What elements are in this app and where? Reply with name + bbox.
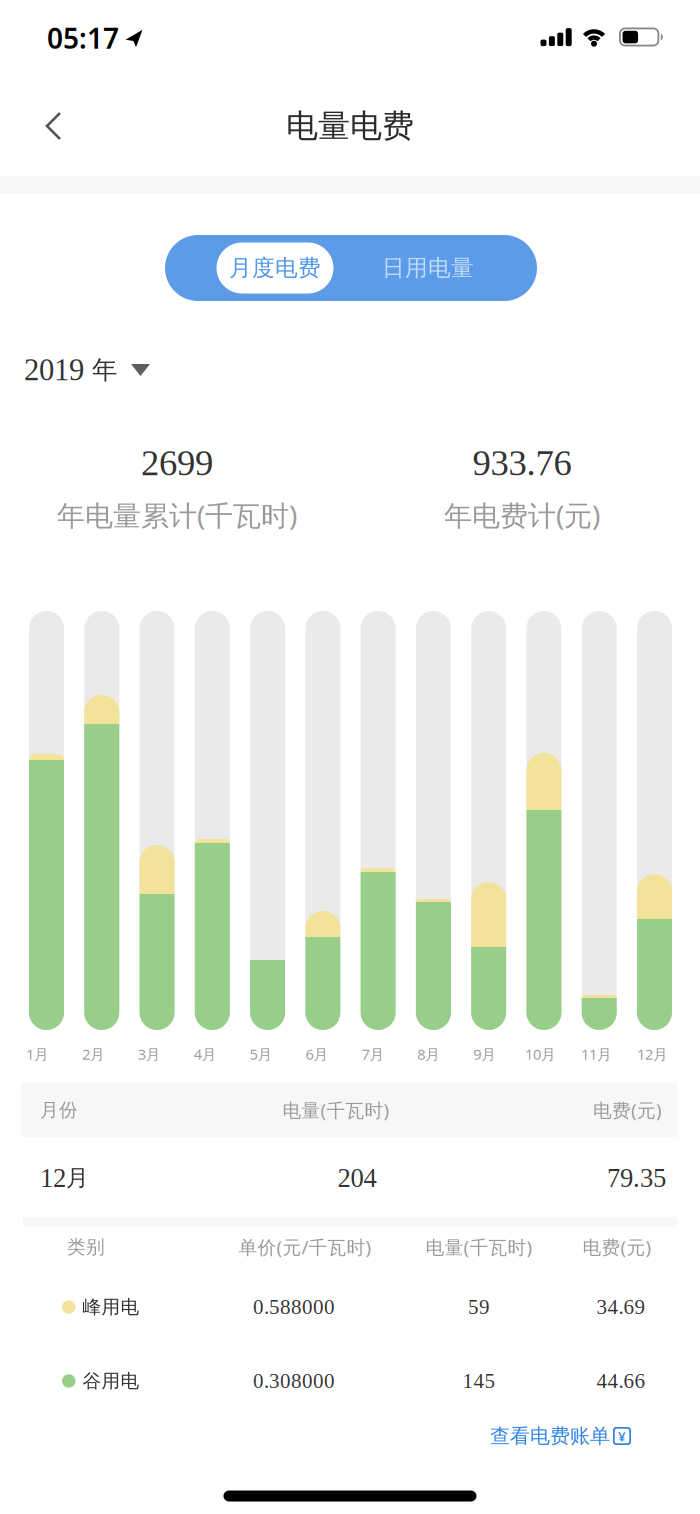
staticText: 3月	[138, 1044, 161, 1064]
staticText: 月	[66, 1164, 89, 1192]
staticText: 电量(千瓦时)	[425, 1235, 532, 1259]
staticText: 查看电费账单	[490, 1424, 610, 1448]
button[interactable]: 2019	[0, 353, 700, 387]
button[interactable]: 查看电费账单	[0, 1424, 700, 1448]
staticText: 日用电量	[382, 254, 474, 282]
staticText: 2019	[24, 353, 92, 387]
staticText: 204	[337, 1163, 376, 1193]
staticText: 933.76	[472, 443, 571, 483]
button[interactable]: Back	[33, 104, 73, 148]
staticText: 59	[468, 1295, 490, 1319]
staticText: 10月	[525, 1044, 556, 1064]
staticText: 1月	[26, 1044, 49, 1064]
staticText: 2699	[141, 443, 213, 483]
staticText: 0.588000	[253, 1295, 335, 1319]
staticText: 34.69	[596, 1295, 645, 1319]
staticText: 年电量累计(千瓦时)	[57, 496, 297, 534]
staticText: 12	[40, 1163, 66, 1193]
staticText: 电费(元)	[593, 1098, 662, 1122]
staticText: 电量(千瓦时)	[282, 1098, 389, 1122]
staticText: 峰用电	[82, 1295, 139, 1318]
staticText: 44.66	[596, 1369, 645, 1393]
staticText: 05:17	[47, 19, 119, 57]
staticText: 8月	[417, 1044, 440, 1064]
staticText: 谷用电	[82, 1369, 139, 1392]
staticText: 年电费计(元)	[444, 496, 600, 534]
staticText: 类别	[67, 1235, 105, 1258]
staticText: 0.308000	[253, 1369, 335, 1393]
staticText: 7月	[361, 1044, 384, 1064]
staticText: 年	[92, 354, 117, 385]
staticText: 79.35	[607, 1163, 666, 1193]
staticText: 月份	[40, 1098, 78, 1121]
button[interactable]: 月度电费	[216, 242, 333, 293]
button[interactable]: 日用电量	[353, 242, 503, 293]
staticText: 单价(元/千瓦时)	[238, 1235, 371, 1259]
staticText: 电量电费	[286, 106, 414, 146]
staticText: 145	[462, 1369, 495, 1393]
staticText: ¥	[618, 1427, 626, 1445]
staticText: 月度电费	[229, 254, 321, 282]
staticText: 12月	[637, 1044, 668, 1064]
staticText: 电费(元)	[582, 1235, 651, 1259]
staticText: 5月	[250, 1044, 273, 1064]
staticText: 11月	[581, 1044, 612, 1064]
staticText: 4月	[194, 1044, 217, 1064]
staticText: 9月	[473, 1044, 496, 1064]
staticText: 2月	[82, 1044, 105, 1064]
staticText: 6月	[305, 1044, 328, 1064]
